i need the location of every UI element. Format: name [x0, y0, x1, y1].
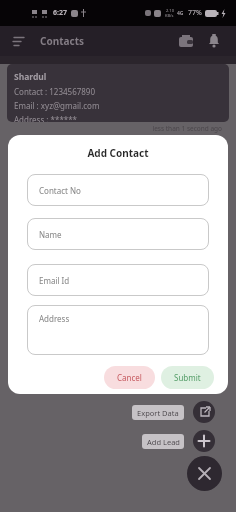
staticText: Contact : 1234567890: [14, 86, 96, 97]
staticText: Email : xyz@gmail.com: [14, 100, 100, 111]
button[interactable]: Email Id: [27, 264, 209, 296]
button[interactable]: [206, 33, 222, 49]
staticText: 2.10: [166, 8, 174, 13]
button[interactable]: Submit: [161, 366, 214, 389]
staticText: Address: [39, 313, 70, 324]
staticText: Shardul: [14, 71, 47, 83]
button[interactable]: [187, 456, 222, 491]
staticText: Export Data: [137, 408, 179, 418]
staticText: 6:27: [53, 8, 67, 18]
staticText: 77%: [188, 8, 202, 18]
button[interactable]: [193, 430, 215, 452]
button[interactable]: Address: [27, 305, 209, 355]
staticText: less than 1 second ago: [0, 124, 222, 133]
staticText: Email Id: [39, 275, 70, 286]
staticText: Add Lead: [147, 437, 180, 447]
staticText: Add Contact: [8, 146, 228, 160]
button[interactable]: [193, 401, 215, 423]
button[interactable]: Contact No: [27, 174, 209, 206]
button[interactable]: [12, 34, 26, 48]
staticText: Contacts: [40, 34, 85, 48]
button[interactable]: Add Lead: [142, 434, 184, 449]
button[interactable]: Name: [27, 218, 209, 250]
button[interactable]: Cancel: [104, 366, 155, 389]
staticText: Cancel: [117, 372, 142, 383]
staticText: Contact No: [39, 185, 81, 196]
button[interactable]: Shardul: [7, 64, 229, 122]
staticText: Submit: [174, 372, 201, 383]
button[interactable]: Export Data: [132, 405, 184, 420]
staticText: KB/s: [165, 13, 174, 18]
staticText: Name: [39, 229, 62, 240]
staticText: Address : ******: [14, 114, 78, 122]
staticText: 4G: [177, 10, 184, 17]
button[interactable]: [178, 33, 194, 49]
